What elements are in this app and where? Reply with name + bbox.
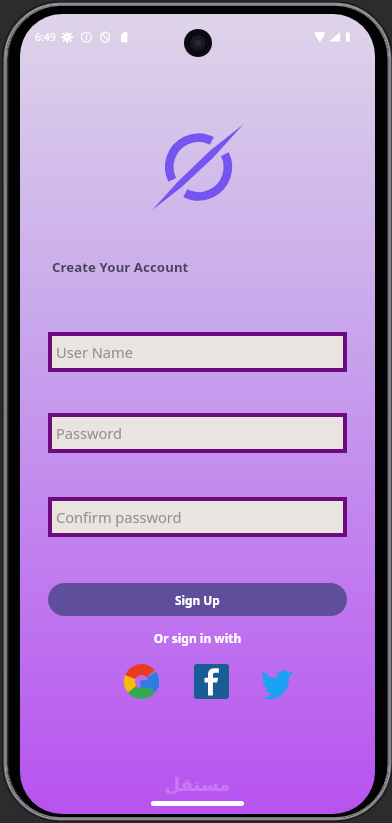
staticText: مستقل <box>20 774 375 795</box>
staticText: 6:49 <box>35 30 56 44</box>
button[interactable]: Sign in with Google <box>122 662 160 700</box>
button[interactable]: Confirm password <box>52 501 343 533</box>
button[interactable]: User Name <box>52 336 343 368</box>
button[interactable]: Sign in with Twitter <box>258 662 296 700</box>
button[interactable]: Password <box>52 417 343 449</box>
staticText: Sign Up <box>175 592 220 608</box>
staticText: Or sign in with <box>20 630 375 646</box>
staticText: Create Your Account <box>52 258 189 276</box>
staticText: Password <box>56 423 123 443</box>
button[interactable]: Sign in with Facebook <box>192 662 230 700</box>
staticText: Confirm password <box>56 507 182 527</box>
button[interactable]: Sign Up <box>48 583 347 616</box>
staticText: User Name <box>56 342 133 362</box>
